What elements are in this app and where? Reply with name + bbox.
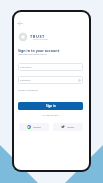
staticText: FINANCIAL GROUP	[33, 39, 49, 41]
button[interactable]: Password	[18, 76, 83, 84]
button[interactable]: Sign in	[18, 102, 83, 110]
button[interactable]: Forgot Password?	[18, 88, 38, 91]
staticText: Google	[33, 126, 41, 129]
button[interactable]: Google	[19, 123, 49, 131]
button[interactable]: Username	[18, 63, 83, 71]
staticText: Username	[20, 66, 81, 69]
staticText: Twitter	[67, 126, 75, 129]
staticText: Or Sign in with	[18, 114, 83, 117]
staticText: Sign in to your account	[18, 48, 60, 53]
staticText: TRUST	[30, 34, 45, 39]
staticText: Sign in	[46, 104, 56, 108]
button[interactable]: Twitter	[53, 123, 83, 131]
staticText: Welcome back! Please sign in.	[18, 53, 48, 56]
staticText: Password	[20, 79, 78, 82]
button[interactable]: Back	[18, 21, 23, 26]
